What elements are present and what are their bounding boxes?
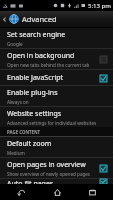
button[interactable]: Auto-fit pages [98,179,108,184]
button[interactable]: Recent apps [77,184,107,200]
button[interactable]: Default zoom [0,137,113,157]
staticText: Medium [7,150,25,156]
staticText: Google [7,41,23,47]
staticText: Show overview of newly opened pages [7,171,91,177]
button[interactable]: Open pages in overview [98,163,108,173]
staticText: Default zoom [7,139,52,149]
button[interactable]: Open pages in overview [0,158,113,178]
staticText: Website settings [7,109,62,119]
button[interactable]: Enable JavaScript [98,73,108,83]
staticText: Advanced settings for individual website… [7,120,97,126]
button[interactable]: Enable plug-ins [0,86,113,106]
staticText: Enable plug-ins [7,88,58,98]
button[interactable]: Home [42,184,72,200]
staticText: Enable JavaScript [7,73,64,83]
button[interactable]: Enable JavaScript [0,70,113,85]
staticText: Always on [7,99,29,105]
staticText: Auto-fit pages [7,179,54,184]
staticText: PAGE CONTENT [7,129,41,135]
button[interactable]: Set search engine [0,28,113,48]
button[interactable]: Back [6,184,36,200]
button[interactable]: Open in background [0,49,113,69]
staticText: Open pages in overview [7,160,86,170]
staticText: Open in background [7,51,75,61]
staticText: Open new tabs behind the current tab [7,62,90,68]
staticText: Advanced [22,14,57,24]
button[interactable]: Auto-fit pages [0,179,113,184]
staticText: Set search engine [7,30,66,40]
staticText: 5:13 pm [88,2,111,10]
button[interactable]: Navigate up [0,11,9,27]
button[interactable]: Open in background [98,54,108,64]
button[interactable]: Website settings [0,107,113,127]
